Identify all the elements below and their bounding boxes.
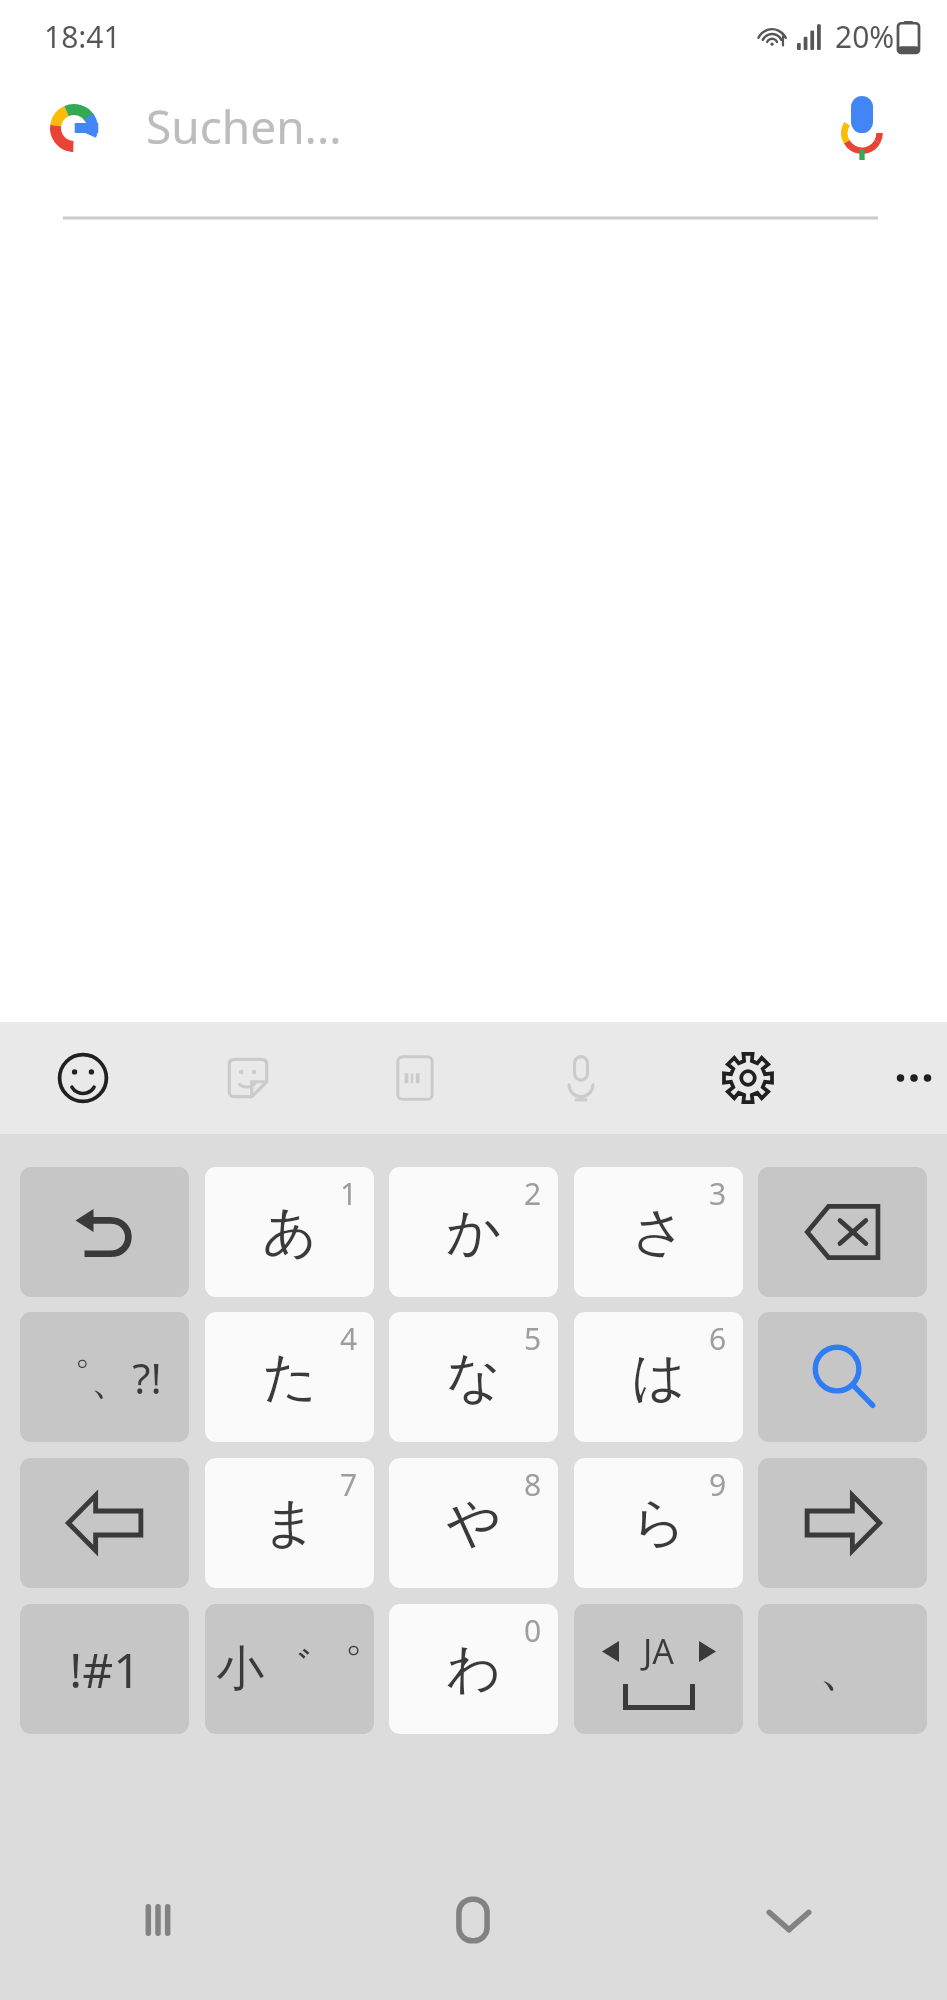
button[interactable]: 、: [758, 1604, 927, 1734]
staticText: 小゛゜: [216, 1639, 363, 1699]
staticText: !#1: [69, 1637, 141, 1702]
button[interactable]: Settings: [702, 1022, 794, 1134]
staticText: 7: [340, 1464, 358, 1505]
button[interactable]: More options: [868, 1022, 947, 1134]
button[interactable]: 7: [205, 1458, 374, 1588]
button[interactable]: 3: [574, 1167, 743, 1297]
button[interactable]: 5: [389, 1312, 558, 1442]
button[interactable]: !#1: [20, 1604, 189, 1734]
staticText: 9: [709, 1464, 727, 1505]
staticText: さ: [631, 1198, 687, 1266]
button[interactable]: Home: [315, 1840, 631, 2000]
staticText: 、: [819, 1639, 867, 1699]
button[interactable]: Hide keyboard: [631, 1840, 947, 2000]
button[interactable]: Stickers: [202, 1022, 294, 1134]
staticText: 20%: [835, 16, 895, 57]
button[interactable]: 小゛゜: [205, 1604, 374, 1734]
staticText: な: [446, 1343, 502, 1411]
button[interactable]: Voice input: [535, 1022, 627, 1134]
staticText: ゜、?!: [47, 1349, 162, 1406]
staticText: 0: [524, 1610, 542, 1651]
staticText: 18:41: [44, 16, 121, 57]
staticText: 6: [709, 1318, 727, 1359]
button[interactable]: Emoji: [37, 1022, 129, 1134]
staticText: や: [446, 1489, 502, 1557]
staticText: JA: [643, 1628, 675, 1674]
button[interactable]: ゜、?!: [20, 1312, 189, 1442]
button[interactable]: Voice search: [840, 96, 884, 160]
staticText: 2: [524, 1173, 542, 1214]
button[interactable]: Google: [50, 104, 98, 152]
button[interactable]: 1: [205, 1167, 374, 1297]
button[interactable]: Recent apps: [0, 1840, 315, 2000]
staticText: ら: [631, 1489, 687, 1557]
staticText: 8: [524, 1464, 542, 1505]
button[interactable]: 9: [574, 1458, 743, 1588]
staticText: 5: [524, 1318, 542, 1359]
button[interactable]: 2: [389, 1167, 558, 1297]
button[interactable]: Backspace: [758, 1167, 927, 1297]
button[interactable]: Suchen...: [146, 95, 342, 158]
staticText: は: [631, 1343, 687, 1411]
button[interactable]: 4: [205, 1312, 374, 1442]
staticText: 1: [340, 1173, 358, 1214]
staticText: た: [262, 1343, 318, 1411]
staticText: か: [446, 1198, 502, 1266]
button[interactable]: Cursor left: [20, 1458, 189, 1588]
button[interactable]: 0: [389, 1604, 558, 1734]
staticText: 4: [340, 1318, 358, 1359]
button[interactable]: Search: [758, 1312, 927, 1442]
button[interactable]: Undo: [20, 1167, 189, 1297]
button[interactable]: GIF: [369, 1022, 461, 1134]
button[interactable]: 6: [574, 1312, 743, 1442]
button[interactable]: 8: [389, 1458, 558, 1588]
staticText: あ: [262, 1198, 318, 1266]
button[interactable]: Space: [574, 1604, 743, 1734]
staticText: わ: [446, 1635, 502, 1703]
button[interactable]: Cursor right: [758, 1458, 927, 1588]
staticText: 3: [709, 1173, 727, 1214]
staticText: ま: [262, 1489, 318, 1557]
